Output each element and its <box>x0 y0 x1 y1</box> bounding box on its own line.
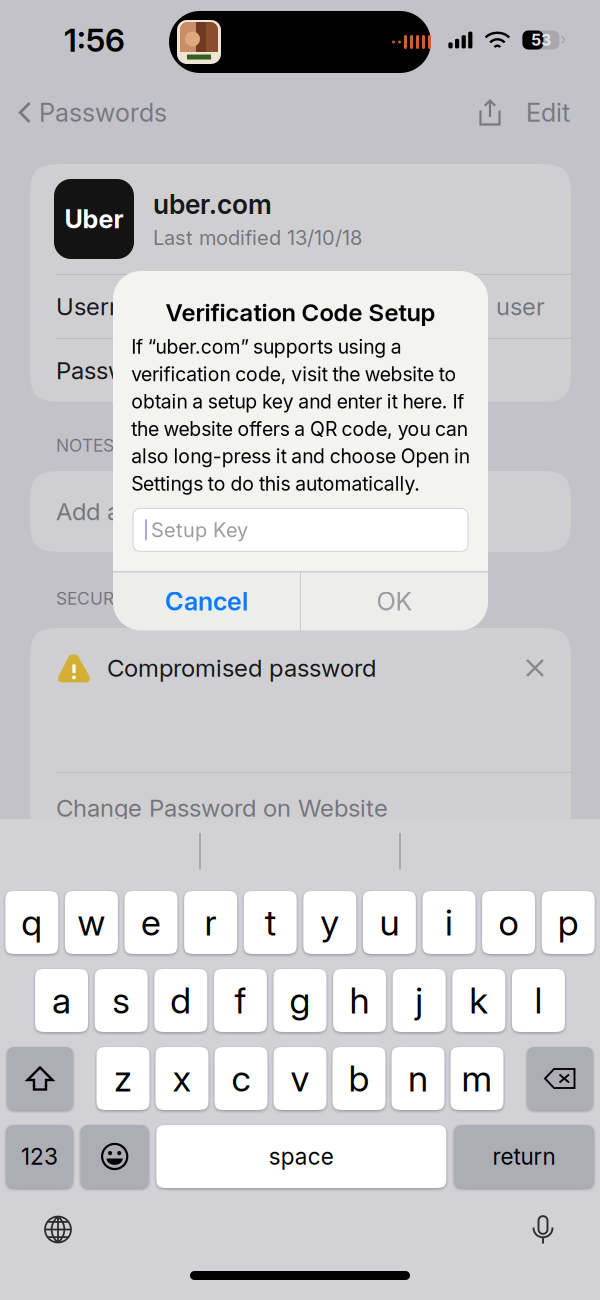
button[interactable]: Shift <box>7 1047 73 1110</box>
staticText: j <box>415 979 423 1022</box>
staticText: b <box>348 1057 369 1100</box>
staticText: c <box>231 1057 250 1100</box>
button[interactable]: c <box>214 1047 267 1110</box>
staticText: t <box>265 901 276 944</box>
staticText: Verification Code Setup <box>165 298 435 327</box>
staticText: g <box>289 979 310 1022</box>
staticText: h <box>350 979 370 1022</box>
button[interactable]: Delete <box>527 1047 593 1110</box>
staticText: Uber <box>64 204 123 234</box>
button[interactable]: space <box>156 1125 446 1188</box>
staticText: m <box>461 1057 492 1100</box>
staticText: k <box>469 979 488 1022</box>
staticText: w <box>77 901 105 944</box>
button[interactable]: w <box>65 891 118 954</box>
button[interactable]: e <box>124 891 177 954</box>
staticText: Username <box>56 292 171 321</box>
button[interactable]: a <box>35 969 88 1032</box>
staticText: Edit <box>526 97 570 128</box>
button[interactable]: Edit <box>514 87 582 138</box>
button[interactable]: j <box>393 969 446 1032</box>
staticText: Cancel <box>165 586 248 617</box>
staticText: f <box>234 979 246 1022</box>
staticText: return <box>492 1143 555 1170</box>
button[interactable]: Switch keyboard <box>36 1207 80 1251</box>
staticText: 123 <box>21 1143 58 1170</box>
staticText: z <box>114 1057 132 1100</box>
button[interactable]: x <box>155 1047 208 1110</box>
staticText: Last modified 13/10/18 <box>153 225 362 250</box>
button[interactable]: Dictation <box>522 1206 564 1253</box>
staticText: q <box>21 901 42 944</box>
staticText: x <box>172 1057 191 1100</box>
button[interactable]: q <box>5 891 58 954</box>
staticText: i <box>445 901 453 944</box>
button[interactable]: y <box>303 891 356 954</box>
staticText: user <box>496 292 545 321</box>
button[interactable]: r <box>184 891 237 954</box>
staticText: a <box>52 979 71 1022</box>
staticText: 1:56 <box>64 21 125 59</box>
staticText: l <box>534 979 542 1022</box>
button[interactable]: m <box>450 1047 503 1110</box>
button[interactable]: Passwords <box>0 87 167 138</box>
button[interactable]: k <box>452 969 505 1032</box>
staticText: r <box>205 901 217 944</box>
button[interactable]: Share <box>466 91 514 134</box>
button[interactable]: f <box>214 969 267 1032</box>
button[interactable]: 123 <box>6 1125 73 1188</box>
staticText: SECURITY RECOMMENDATIONS <box>56 588 325 609</box>
staticText: Change Password on Website <box>56 793 388 822</box>
button[interactable]: o <box>482 891 535 954</box>
button[interactable]: Cancel <box>113 572 300 630</box>
button[interactable]: u <box>363 891 416 954</box>
staticText: space <box>269 1143 334 1170</box>
button[interactable]: l <box>512 969 565 1032</box>
staticText: d <box>170 979 191 1022</box>
staticText: n <box>408 1057 428 1100</box>
button[interactable]: p <box>542 891 595 954</box>
staticText: uber.com <box>153 188 272 221</box>
staticText: NOTES <box>56 435 114 456</box>
staticText: y <box>320 901 339 944</box>
button[interactable]: n <box>391 1047 444 1110</box>
staticText: e <box>141 901 161 944</box>
staticText: If “uber.com” supports using a verificat… <box>131 335 470 495</box>
staticText: v <box>290 1057 309 1100</box>
staticText: Passwords <box>39 97 167 128</box>
button[interactable]: b <box>332 1047 385 1110</box>
button[interactable]: return <box>454 1125 594 1188</box>
staticText: u <box>379 901 399 944</box>
staticText: Add a Note <box>56 497 181 526</box>
staticText: 53 <box>531 30 551 50</box>
staticText: OK <box>376 586 412 617</box>
button[interactable]: v <box>273 1047 326 1110</box>
staticText: o <box>499 901 519 944</box>
staticText: s <box>112 979 130 1022</box>
button[interactable]: i <box>422 891 475 954</box>
button[interactable]: t <box>244 891 297 954</box>
button[interactable]: s <box>95 969 148 1032</box>
button[interactable]: d <box>154 969 207 1032</box>
staticText: Compromised password <box>107 653 376 682</box>
button[interactable]: z <box>96 1047 149 1110</box>
button[interactable]: g <box>273 969 326 1032</box>
button[interactable]: Emoji <box>81 1125 149 1188</box>
button[interactable]: OK <box>301 572 488 630</box>
staticText: Setup Key <box>151 518 248 542</box>
staticText: p <box>558 901 579 944</box>
button[interactable]: h <box>333 969 386 1032</box>
staticText: Password <box>56 356 163 385</box>
